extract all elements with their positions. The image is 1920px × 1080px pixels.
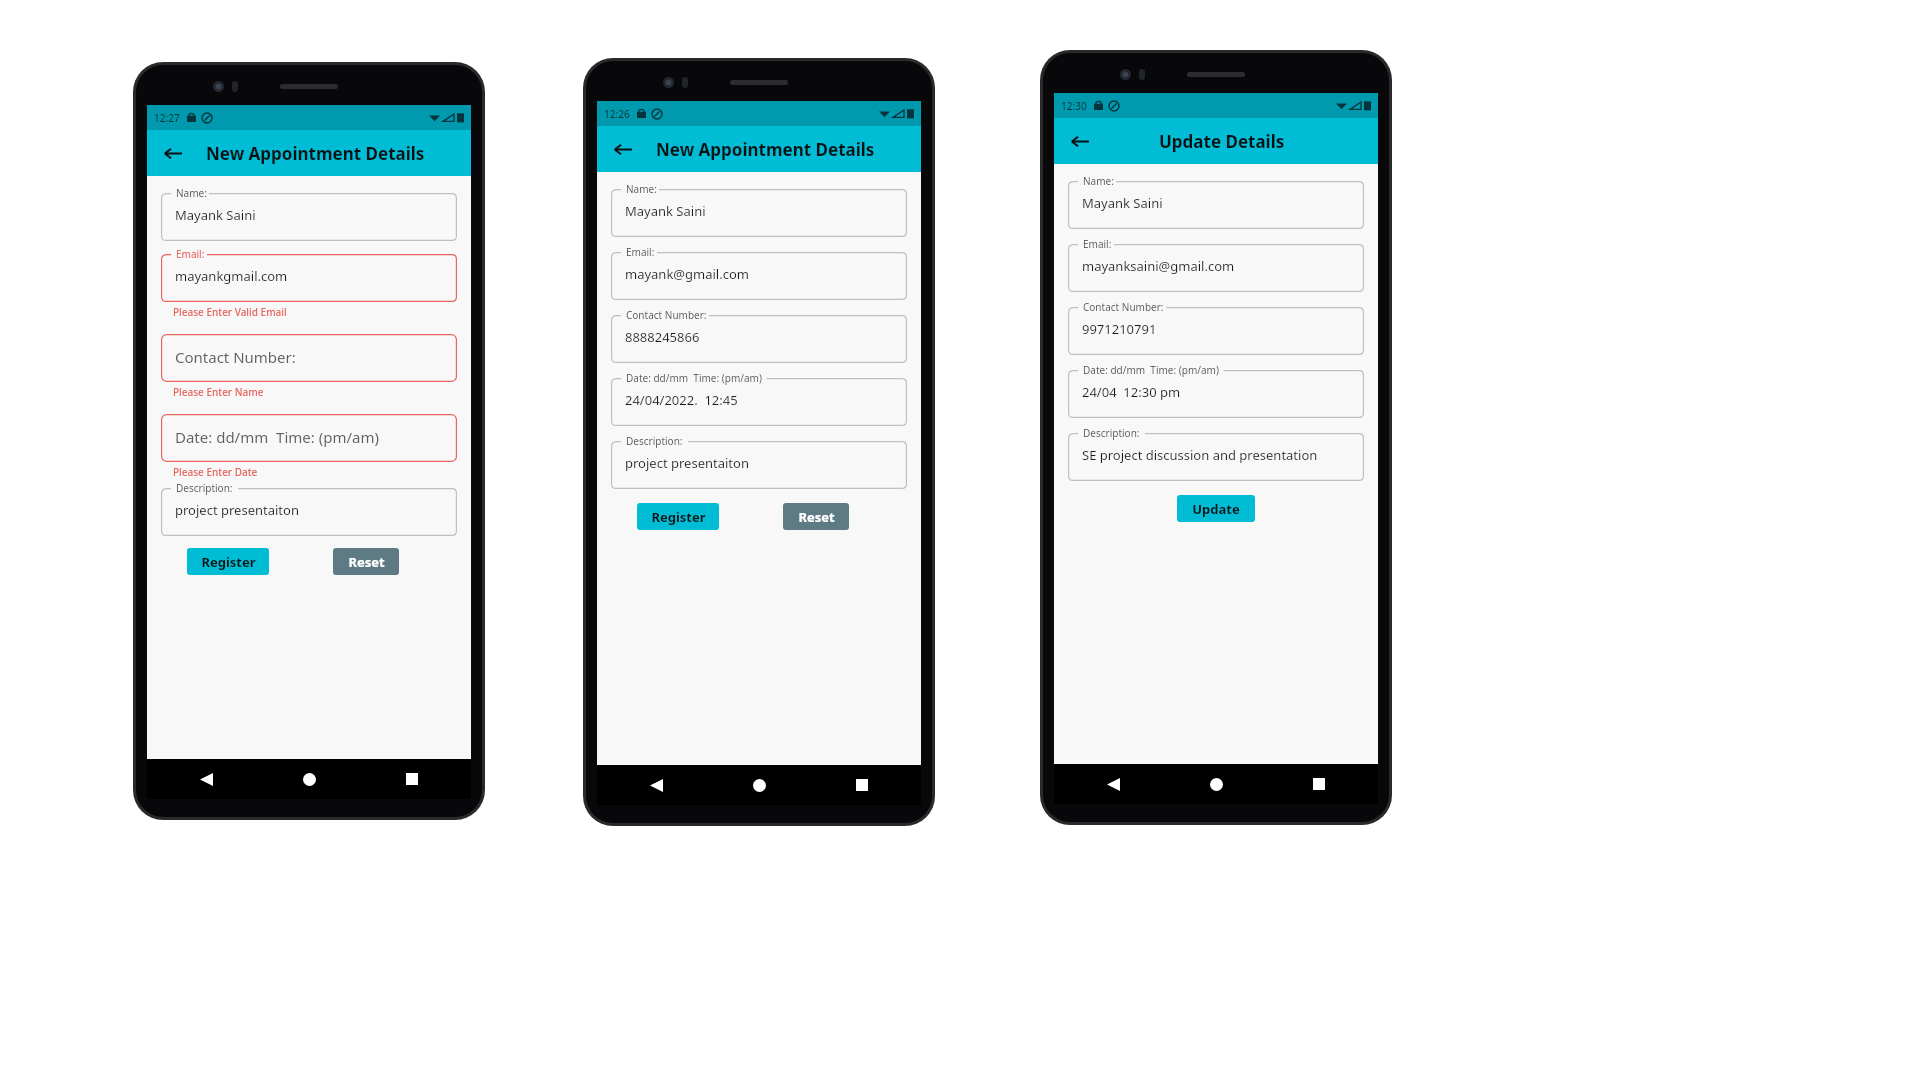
staticText: Description: — [176, 481, 233, 495]
button[interactable]: Email: — [611, 245, 907, 300]
staticText: 8888245866 — [625, 328, 700, 346]
staticText: Name: — [626, 182, 657, 196]
staticText: Email: — [626, 245, 655, 259]
button[interactable]: Name: — [1068, 174, 1364, 229]
staticText: 24/04/2022. 12:45 — [625, 391, 738, 409]
staticText: 24/04 12:30 pm — [1082, 383, 1181, 401]
button[interactable]: Reset — [783, 503, 849, 530]
button[interactable]: Home — [294, 764, 324, 794]
staticText: Date: dd/mm Time: (pm/am) — [175, 427, 379, 447]
staticText: New Appointment Details — [206, 142, 425, 165]
staticText: Update — [1192, 500, 1240, 518]
button[interactable]: Name: — [611, 182, 907, 237]
staticText: New Appointment Details — [656, 138, 875, 161]
staticText: Date: dd/mm Time: (pm/am) — [626, 371, 762, 385]
staticText: Contact Number: — [1083, 300, 1164, 314]
button[interactable]: Update — [1177, 495, 1255, 522]
staticText: SE project discussion and presentation — [1082, 446, 1318, 464]
button[interactable]: Home — [1201, 769, 1231, 799]
button[interactable]: Date: dd/mm Time: (pm/am) — [1068, 363, 1364, 418]
staticText: Mayank Saini — [1082, 194, 1163, 212]
staticText: Please Enter Date — [173, 465, 258, 479]
staticText: Reset — [798, 508, 835, 526]
staticText: Mayank Saini — [625, 202, 706, 220]
button[interactable]: Description: — [611, 434, 907, 489]
staticText: mayanksaini@gmail.com — [1082, 257, 1235, 275]
button[interactable]: Register — [637, 503, 719, 530]
staticText: Name: — [176, 186, 207, 200]
button[interactable]: Contact Number: — [611, 308, 907, 363]
button[interactable]: Date: dd/mm Time: (pm/am) — [161, 407, 457, 462]
staticText: project presentaiton — [175, 501, 299, 519]
staticText: 9971210791 — [1082, 320, 1157, 338]
button[interactable]: Description: — [1068, 426, 1364, 481]
staticText: 12:30 — [1061, 99, 1087, 113]
button[interactable]: Back — [605, 132, 639, 166]
button[interactable]: Email: — [161, 247, 457, 302]
staticText: Register — [201, 553, 256, 571]
staticText: Description: — [1083, 426, 1140, 440]
staticText: Please Enter Name — [173, 385, 264, 399]
staticText: Description: — [626, 434, 683, 448]
button[interactable]: Recents — [397, 764, 427, 794]
staticText: Reset — [348, 553, 385, 571]
staticText: Contact Number: — [626, 308, 707, 322]
button[interactable]: Back — [1098, 769, 1128, 799]
staticText: Register — [651, 508, 706, 526]
staticText: Date: dd/mm Time: (pm/am) — [1083, 363, 1219, 377]
button[interactable]: Contact Number: — [161, 327, 457, 382]
button[interactable]: Contact Number: — [1068, 300, 1364, 355]
button[interactable]: Date: dd/mm Time: (pm/am) — [611, 371, 907, 426]
staticText: Name: — [1083, 174, 1114, 188]
staticText: Mayank Saini — [175, 206, 256, 224]
staticText: mayankgmail.com — [175, 267, 288, 285]
button[interactable]: Name: — [161, 186, 457, 241]
button[interactable]: Home — [744, 770, 774, 800]
button[interactable]: Email: — [1068, 237, 1364, 292]
button[interactable]: Recents — [847, 770, 877, 800]
button[interactable]: Recents — [1304, 769, 1334, 799]
staticText: project presentaiton — [625, 454, 749, 472]
staticText: Update Details — [1159, 130, 1285, 153]
staticText: Email: — [176, 247, 205, 261]
button[interactable]: Back — [1062, 124, 1096, 158]
button[interactable]: Description: — [161, 481, 457, 536]
button[interactable]: Back — [641, 770, 671, 800]
button[interactable]: Register — [187, 548, 269, 575]
button[interactable]: Back — [191, 764, 221, 794]
staticText: 12:27 — [154, 111, 180, 125]
staticText: Please Enter Valid Email — [173, 305, 287, 319]
staticText: 12:26 — [604, 107, 630, 121]
button[interactable]: Back — [155, 136, 189, 170]
staticText: mayank@gmail.com — [625, 265, 749, 283]
staticText: Email: — [1083, 237, 1112, 251]
staticText: Contact Number: — [175, 347, 296, 367]
button[interactable]: Reset — [333, 548, 399, 575]
